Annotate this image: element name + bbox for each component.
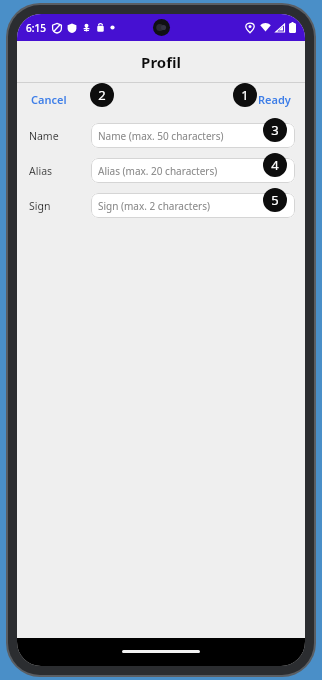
staticText: 4 [271, 156, 279, 174]
staticText: Name (max. 50 characters) [98, 129, 224, 143]
other: Home gesture bar [122, 650, 200, 653]
staticText: Sign (max. 2 characters) [98, 199, 210, 213]
button[interactable]: Sign (max. 2 characters) [91, 193, 295, 218]
staticText: Alias (max. 20 characters) [98, 164, 218, 178]
staticText: 3 [271, 121, 279, 139]
other: Annotation 5 [263, 188, 287, 212]
staticText: Ready [258, 92, 291, 107]
staticText: 1 [241, 86, 249, 104]
button[interactable]: Name (max. 50 characters) [91, 123, 295, 148]
other: Annotation 4 [263, 153, 287, 177]
staticText: 2 [98, 86, 106, 104]
staticText: Profil [141, 52, 181, 72]
other: Annotation 1 [233, 83, 257, 107]
staticText: 5 [271, 191, 279, 209]
staticText: 6:15 [26, 21, 46, 35]
button[interactable]: Ready [256, 88, 293, 111]
other: Annotation 3 [263, 118, 287, 142]
staticText: Cancel [31, 92, 67, 107]
button[interactable]: Alias (max. 20 characters) [91, 158, 295, 183]
button[interactable]: Cancel [29, 88, 69, 111]
staticText: Sign [29, 199, 51, 213]
staticText: Alias [29, 164, 53, 178]
other: Annotation 2 [90, 83, 114, 107]
staticText: Name [29, 129, 59, 143]
